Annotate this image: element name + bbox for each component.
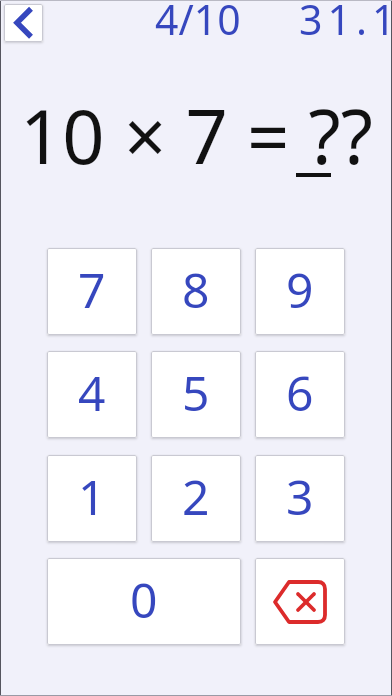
staticText: 6 xyxy=(286,360,314,425)
button[interactable]: 3 xyxy=(255,455,345,542)
staticText: 3 xyxy=(286,464,314,529)
staticText: 10 × 7 = ?? xyxy=(20,85,373,186)
staticText: 8 xyxy=(182,257,210,322)
button[interactable]: 1 xyxy=(47,455,137,542)
button[interactable]: 5 xyxy=(151,351,241,438)
staticText: 9 xyxy=(286,257,314,322)
button[interactable]: 4 xyxy=(47,351,137,438)
button[interactable] xyxy=(4,4,43,42)
staticText: 1 xyxy=(78,464,106,529)
staticText: 2 xyxy=(182,464,210,529)
button[interactable]: 9 xyxy=(255,248,345,335)
staticText: 0 xyxy=(130,567,158,632)
staticText: 4/10 xyxy=(155,0,241,47)
staticText: 7 xyxy=(78,257,106,322)
staticText: 4 xyxy=(78,360,106,425)
button[interactable]: 0 xyxy=(47,558,241,645)
button[interactable]: 6 xyxy=(255,351,345,438)
button[interactable]: 2 xyxy=(151,455,241,542)
staticText: 31.1 xyxy=(299,0,392,47)
button[interactable]: 8 xyxy=(151,248,241,335)
staticText: 5 xyxy=(182,360,210,425)
button[interactable] xyxy=(255,558,345,645)
button[interactable]: 7 xyxy=(47,248,137,335)
